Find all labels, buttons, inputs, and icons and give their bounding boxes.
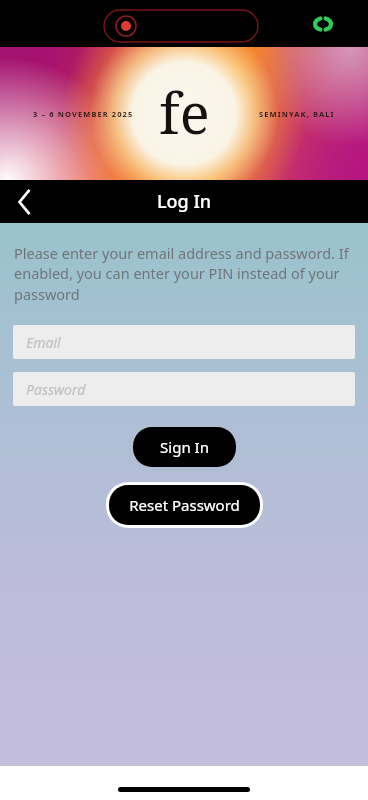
button[interactable]: Password [13, 372, 355, 406]
other: Connected [312, 17, 334, 31]
staticText: Sign In [160, 437, 209, 457]
staticText: Password [26, 380, 86, 399]
staticText: Log In [157, 189, 212, 214]
staticText: Reset Password [129, 495, 240, 515]
staticText: Please enter your email address and pass… [14, 243, 354, 305]
button[interactable]: Email [13, 325, 355, 359]
staticText: fe [159, 74, 210, 150]
staticText: Email [26, 333, 61, 352]
button[interactable]: Reset Password [109, 485, 260, 525]
staticText: 3 – 6 NOVEMBER 2025 [33, 109, 134, 119]
staticText: SEMINYAK, BALI [259, 109, 335, 119]
button[interactable]: Sign In [133, 427, 236, 467]
button[interactable]: Back [0, 180, 48, 223]
